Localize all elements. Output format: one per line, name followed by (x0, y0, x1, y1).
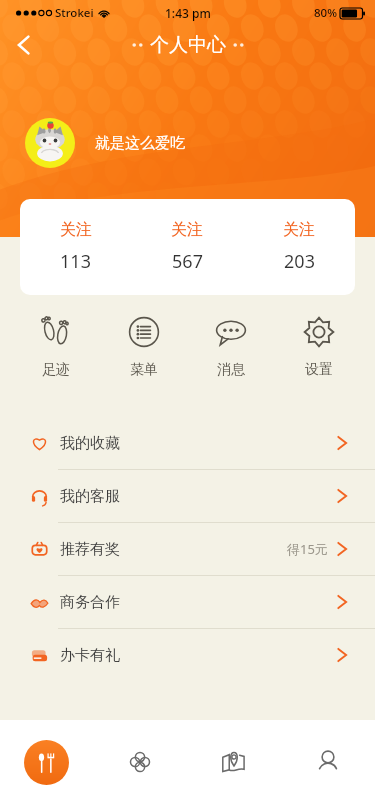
staticText: 推荐有奖 (60, 540, 120, 559)
button[interactable]: 推荐有奖 (0, 523, 375, 575)
staticText: 菜单 (130, 361, 158, 379)
button[interactable]: 关注 (243, 199, 355, 295)
button[interactable]: 足迹 (17, 310, 95, 383)
staticText: 商务合作 (60, 593, 120, 612)
staticText: 我的收藏 (60, 434, 120, 453)
staticText: 消息 (217, 361, 245, 379)
button[interactable]: 我的收藏 (0, 417, 375, 469)
staticText: 关注 (60, 220, 92, 240)
button[interactable]: 办卡有礼 (0, 629, 375, 681)
button[interactable]: 菜单 (105, 310, 183, 383)
staticText: 关注 (171, 220, 203, 240)
staticText: 就是这么爱吃 (95, 134, 185, 153)
staticText: 个人中心 (150, 33, 226, 57)
staticText: 我的客服 (60, 487, 120, 506)
button[interactable]: 就是这么爱吃 (25, 118, 185, 168)
staticText: 得15元 (287, 540, 328, 558)
button[interactable]: Discover (93, 720, 187, 812)
staticText: 567 (172, 249, 203, 274)
staticText: 办卡有礼 (60, 646, 120, 665)
button[interactable]: Map (187, 720, 281, 812)
staticText: 1:43 pm (165, 5, 211, 21)
staticText: 设置 (305, 361, 333, 379)
button[interactable]: 消息 (192, 310, 270, 383)
staticText: 113 (60, 249, 91, 274)
staticText: 203 (284, 249, 315, 274)
button[interactable]: Food (0, 720, 93, 812)
staticText: Strokei (55, 5, 94, 21)
staticText: 80% (314, 5, 337, 21)
button[interactable]: 我的客服 (0, 470, 375, 522)
button[interactable]: Profile (281, 720, 375, 812)
button[interactable]: 关注 (20, 199, 131, 295)
button[interactable]: 设置 (280, 310, 358, 383)
staticText: 足迹 (42, 361, 70, 379)
button[interactable]: 关注 (131, 199, 243, 295)
button[interactable]: Back (0, 26, 48, 64)
button[interactable]: 商务合作 (0, 576, 375, 628)
staticText: 关注 (283, 220, 315, 240)
